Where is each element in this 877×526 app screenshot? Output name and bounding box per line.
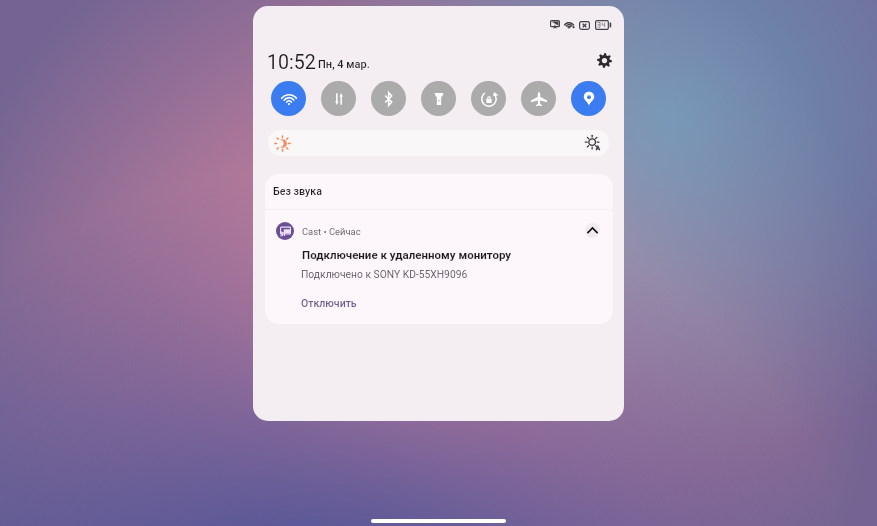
button[interactable]: Wi-Fi	[271, 81, 306, 116]
button[interactable]: Без звука	[265, 174, 613, 209]
button[interactable]: Auto rotate	[471, 81, 506, 116]
button[interactable]: Cast • Сейчас	[265, 210, 613, 324]
staticText: Подключено к SONY KD-55XH9096	[301, 268, 468, 280]
button[interactable]: Flashlight	[421, 81, 456, 116]
button[interactable]: Mobile data	[321, 81, 356, 116]
staticText: Отключить	[301, 297, 357, 309]
button[interactable]: Airplane mode	[521, 81, 556, 116]
button[interactable]: Brightness	[268, 130, 609, 156]
button[interactable]: Bluetooth	[371, 81, 406, 116]
button[interactable]: Отключить	[297, 294, 361, 312]
button[interactable]: Location	[571, 81, 606, 116]
button[interactable]: Collapse	[585, 223, 600, 238]
staticText: 10:52	[267, 51, 316, 74]
button[interactable]: Settings	[591, 47, 617, 73]
staticText: Пн, 4 мар.	[318, 58, 370, 71]
staticText: Без звука	[273, 185, 322, 198]
staticText: Cast • Сейчас	[302, 226, 361, 237]
staticText: Подключение к удаленному монитору	[302, 248, 512, 261]
